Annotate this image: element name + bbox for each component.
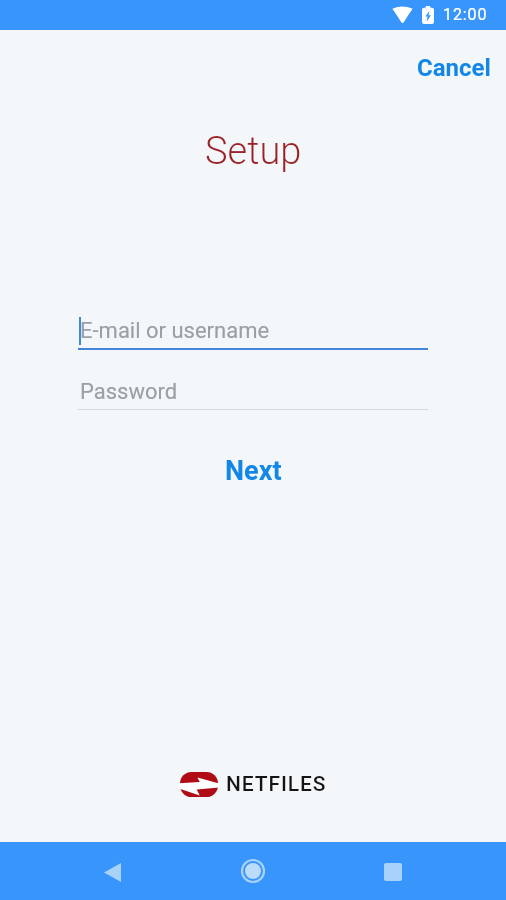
button[interactable]: Netfiles (180, 772, 327, 797)
staticText: Password (80, 379, 178, 405)
staticText: Cancel (417, 54, 491, 82)
button[interactable]: Password (78, 375, 428, 410)
staticText: E-mail or username (80, 318, 270, 344)
button[interactable]: Cancel (405, 46, 503, 90)
staticText: Setup (205, 129, 302, 174)
button[interactable]: Back (88, 848, 136, 896)
button[interactable]: E-mail or username (78, 314, 428, 350)
staticText: 12:00 (443, 5, 488, 24)
staticText: NETFILES (226, 772, 327, 797)
button[interactable]: Home (229, 847, 277, 895)
button[interactable]: Next (201, 447, 306, 495)
staticText: Next (225, 455, 282, 487)
button[interactable]: Recent apps (369, 848, 417, 896)
